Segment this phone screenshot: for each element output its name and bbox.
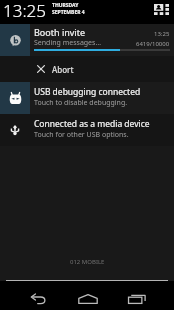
staticText: 012 MOBILE [70,258,105,266]
staticText: 13:25 [154,30,170,38]
staticText: Touch for other USB options. [34,130,129,140]
button[interactable]: Back [13,288,63,310]
staticText: THURSDAY [52,2,79,9]
button[interactable]: Abort [0,56,174,82]
button[interactable]: Home [63,288,112,310]
staticText: Sending messages… [34,38,136,48]
staticText: Booth invite [34,26,154,38]
button[interactable]: Connected as a media device [0,114,174,146]
button[interactable]: USB debugging connected [0,82,174,114]
staticText: 6419/10000 [136,40,170,48]
button[interactable]: Recent apps [112,288,161,310]
button[interactable]: Booth invite [0,24,174,56]
staticText: Connected as a media device [34,118,150,130]
staticText: Abort [52,64,74,75]
button[interactable]: Quick settings [153,4,169,20]
staticText: 13:25 [3,0,46,22]
staticText: USB debugging connected [34,86,141,98]
staticText: Touch to disable debugging. [34,98,128,108]
staticText: SEPTEMBER 4 [52,9,85,16]
